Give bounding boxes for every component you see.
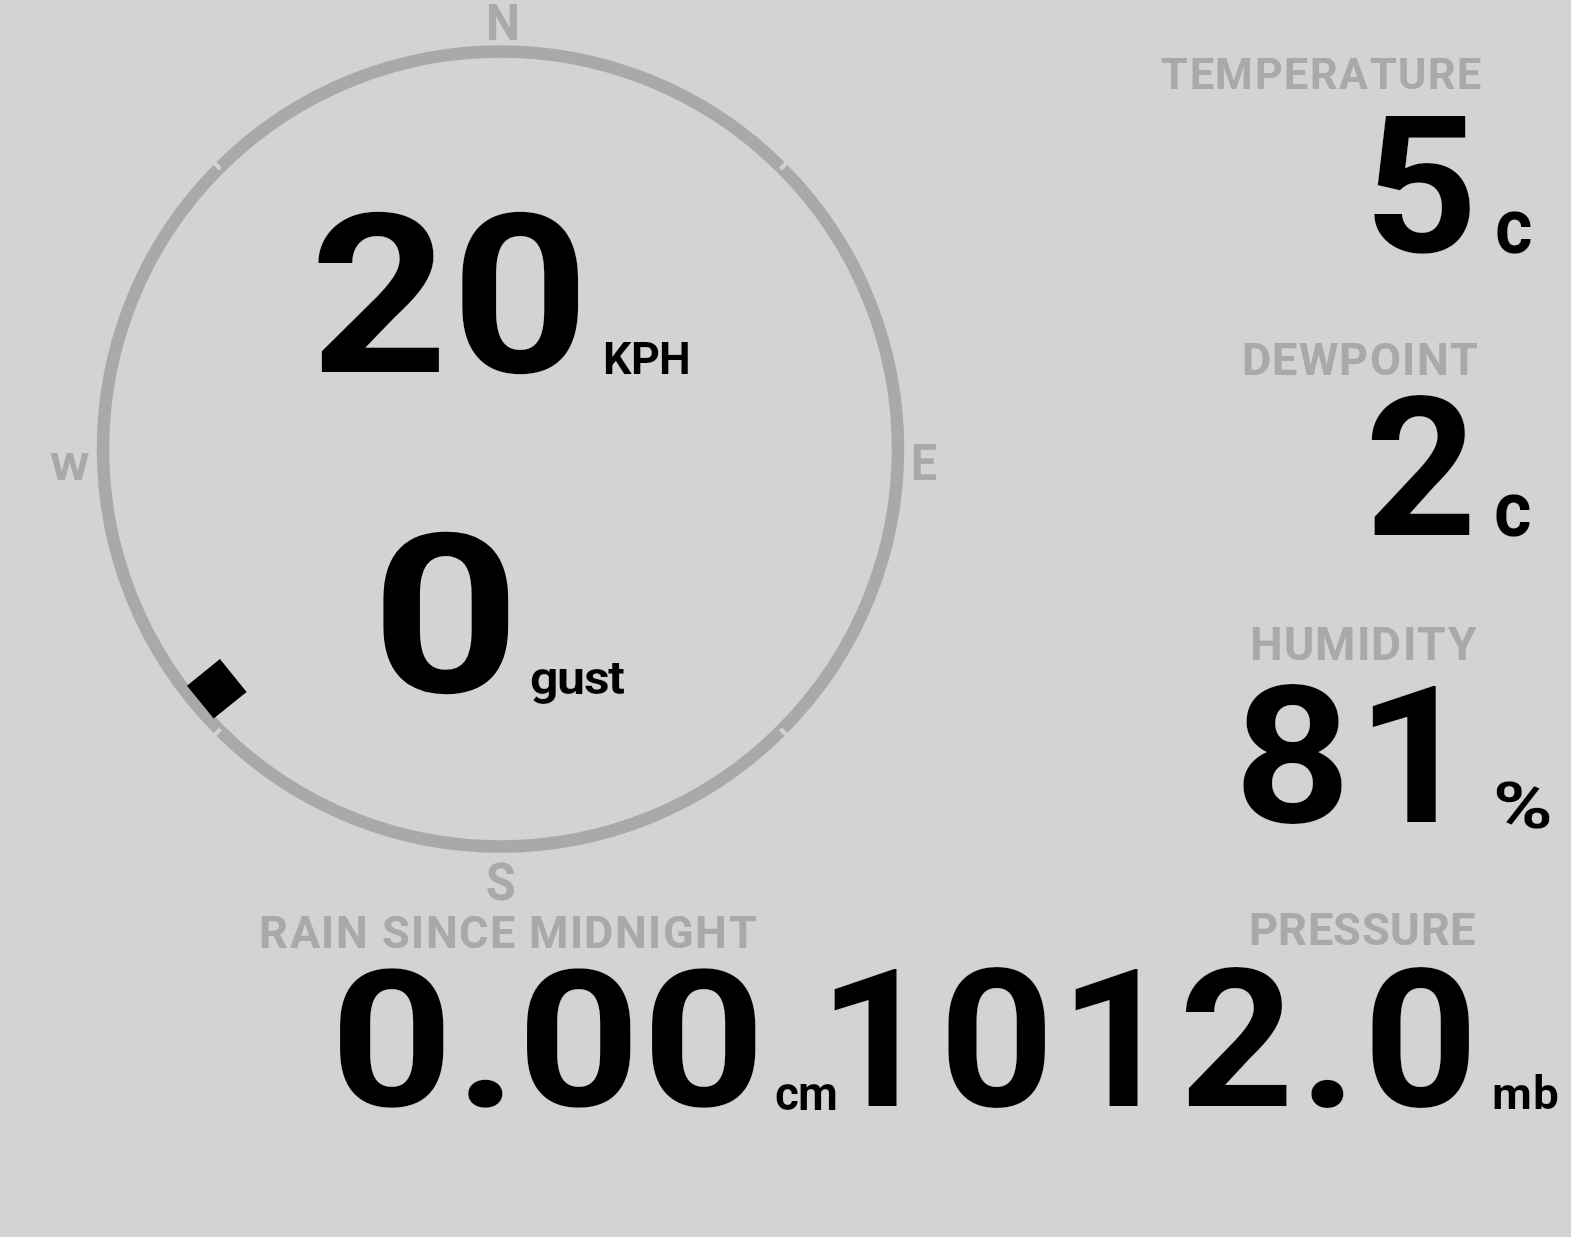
- button[interactable]: Dewpoint 2 c: [1140, 320, 1560, 550]
- button[interactable]: Rain since midnight 0.00 cm: [250, 900, 850, 1120]
- button[interactable]: Temperature 5 c: [1140, 40, 1560, 270]
- button[interactable]: Humidity 81 percent: [1140, 605, 1560, 840]
- button[interactable]: Pressure 1012.0 mb: [860, 900, 1560, 1120]
- button[interactable]: Wind 20 KPH, gust 0, compass: [80, 40, 930, 910]
